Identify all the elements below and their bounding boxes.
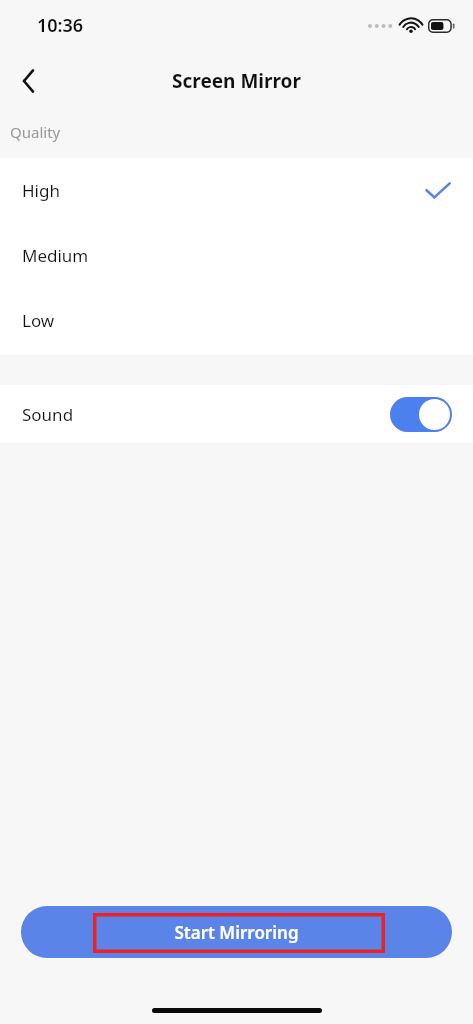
button[interactable]: Medium (0, 223, 473, 288)
staticText: Screen Mirror (172, 68, 301, 94)
staticText: Quality (10, 122, 61, 142)
button[interactable]: Start Mirroring (21, 906, 452, 958)
staticText: Low (22, 309, 55, 332)
button[interactable]: Low (0, 288, 473, 353)
staticText: Medium (22, 244, 89, 267)
staticText: Sound (22, 403, 74, 426)
button[interactable]: Sound toggle (390, 397, 452, 432)
button[interactable]: Sound (0, 385, 473, 443)
staticText: Start Mirroring (174, 921, 299, 944)
button[interactable]: Back (6, 59, 50, 103)
staticText: High (22, 179, 60, 202)
staticText: 10:36 (37, 13, 84, 38)
button[interactable]: High (0, 158, 473, 223)
